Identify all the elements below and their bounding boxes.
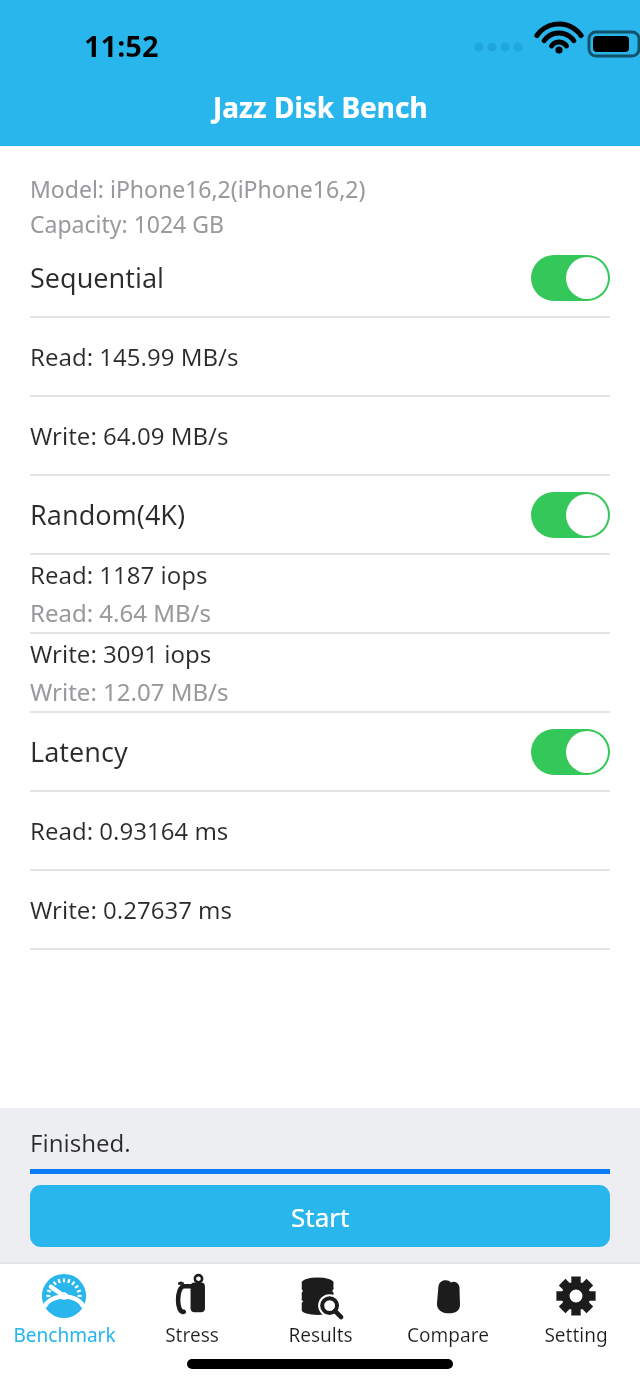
button[interactable]: Benchmark [0, 1264, 128, 1349]
staticText: Write: 12.07 MB/s [30, 675, 229, 708]
staticText: Model: iPhone16,2(iPhone16,2) [30, 173, 366, 204]
button[interactable]: Random(4K) [0, 476, 640, 553]
staticText: Random(4K) [30, 496, 186, 533]
button[interactable]: Write: 64.09 MB/s [0, 397, 640, 474]
staticText: Read: 1187 iops [30, 558, 208, 591]
staticText: Setting [544, 1322, 608, 1348]
staticText: Benchmark [13, 1322, 116, 1348]
button[interactable]: Compare [384, 1264, 512, 1349]
button[interactable]: Setting [512, 1264, 640, 1349]
staticText: Read: 0.93164 ms [30, 814, 229, 847]
staticText: Finished. [30, 1126, 131, 1159]
staticText: Capacity: 1024 GB [30, 208, 224, 239]
button[interactable]: Write: 3091 iops [0, 634, 640, 711]
button[interactable]: Read: 145.99 MB/s [0, 318, 640, 395]
staticText: Write: 3091 iops [30, 637, 212, 670]
button[interactable]: Stress [128, 1264, 256, 1349]
staticText: Start [291, 1199, 350, 1234]
button[interactable]: Write: 0.27637 ms [0, 871, 640, 948]
staticText: Latency [30, 733, 128, 770]
button[interactable]: Latency [0, 713, 640, 790]
staticText: Jazz Disk Bench [213, 88, 428, 126]
staticText: Write: 64.09 MB/s [30, 419, 229, 452]
staticText: Stress [165, 1322, 219, 1348]
button[interactable]: Read: 0.93164 ms [0, 792, 640, 869]
button[interactable]: Toggle [531, 255, 610, 301]
button[interactable]: Start [30, 1185, 610, 1247]
button[interactable]: Sequential [0, 239, 640, 316]
staticText: Write: 0.27637 ms [30, 893, 233, 926]
staticText: Compare [407, 1322, 489, 1348]
button[interactable]: Read: 1187 iops [0, 555, 640, 632]
button[interactable]: Toggle [531, 729, 610, 775]
staticText: Sequential [30, 259, 165, 296]
button[interactable]: Results [256, 1264, 384, 1349]
staticText: Read: 4.64 MB/s [30, 596, 212, 629]
staticText: Read: 145.99 MB/s [30, 340, 239, 373]
staticText: Results [288, 1322, 353, 1348]
staticText: 11:52 [84, 26, 159, 65]
button[interactable]: Toggle [531, 492, 610, 538]
